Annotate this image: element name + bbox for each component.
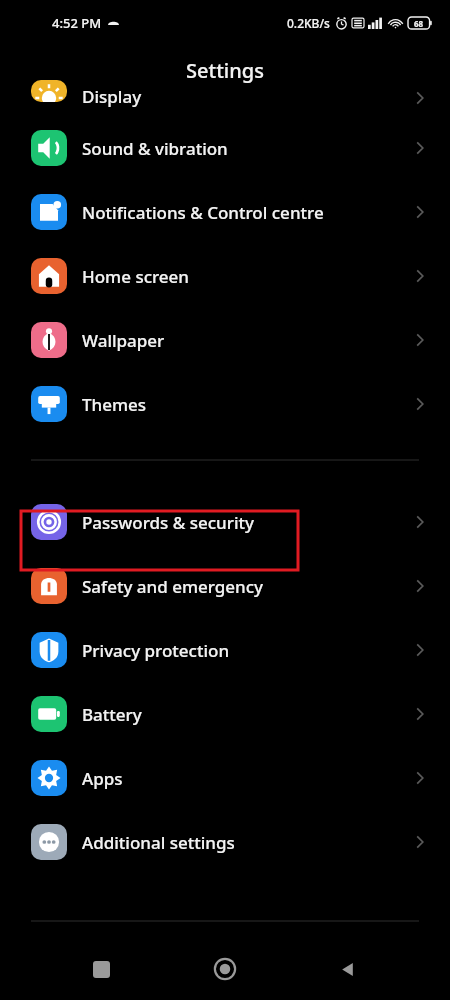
staticText: Privacy protection — [82, 639, 230, 662]
staticText: 4:52 PM — [52, 14, 102, 32]
button[interactable]: Home — [150, 938, 300, 1000]
staticText: 0.2KB/s — [287, 15, 330, 31]
staticText: Notifications & Control centre — [82, 201, 324, 224]
staticText: Passwords & security — [82, 511, 255, 534]
staticText: Battery — [82, 703, 142, 726]
button[interactable]: Additional settings — [0, 810, 450, 874]
staticText: Display — [82, 85, 142, 107]
button[interactable]: Passwords & security — [0, 490, 450, 554]
button[interactable]: Recents — [0, 938, 150, 1000]
button[interactable]: Safety and emergency — [0, 554, 450, 618]
staticText: Themes — [82, 393, 147, 416]
button[interactable]: Themes — [0, 372, 450, 436]
staticText: Wallpaper — [82, 329, 165, 352]
button[interactable]: Sound & vibration — [0, 116, 450, 180]
staticText: Safety and emergency — [82, 575, 264, 598]
button[interactable]: Battery — [0, 682, 450, 746]
staticText: 68 — [414, 18, 424, 29]
staticText: Apps — [82, 767, 123, 790]
button[interactable]: Privacy protection — [0, 618, 450, 682]
button[interactable]: Wallpaper — [0, 308, 450, 372]
button[interactable]: Notifications & Control centre — [0, 180, 450, 244]
staticText: Settings — [186, 57, 264, 84]
staticText: Home screen — [82, 265, 190, 288]
staticText: Sound & vibration — [82, 137, 228, 160]
staticText: Additional settings — [82, 831, 235, 854]
button[interactable]: Apps — [0, 746, 450, 810]
button[interactable]: Home screen — [0, 244, 450, 308]
button[interactable]: Back — [300, 938, 450, 1000]
